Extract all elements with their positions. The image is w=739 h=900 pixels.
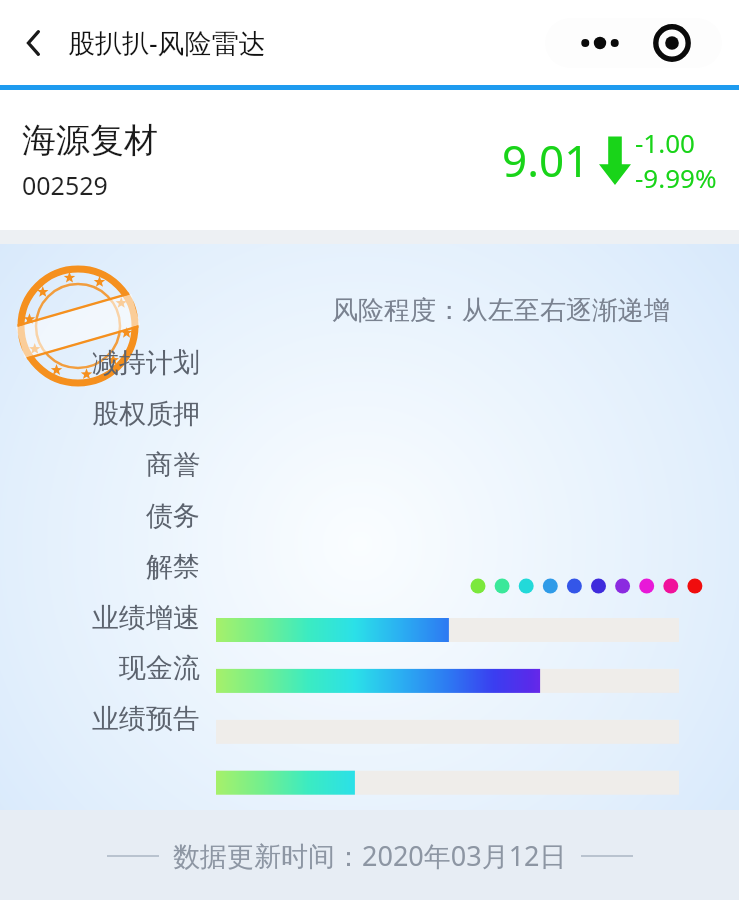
staticText: 海源复材 <box>22 119 158 162</box>
staticText: 002529 <box>22 168 108 202</box>
staticText: 业绩增速 <box>0 601 200 635</box>
button[interactable]: Back <box>14 20 54 66</box>
staticText: 现金流 <box>0 651 200 685</box>
staticText: 解禁 <box>0 550 200 584</box>
staticText: 股权质押 <box>0 397 200 431</box>
staticText: 9.01 <box>502 130 590 190</box>
staticText: 数据更新时间：2020年03月12日 <box>173 837 567 874</box>
staticText: 风险程度：从左至右逐渐递增 <box>332 294 670 327</box>
staticText: -1.00 <box>635 125 695 160</box>
button[interactable]: More and Close <box>545 18 722 68</box>
staticText: 业绩预告 <box>0 702 200 736</box>
staticText: 股扒扒-风险雷达 <box>68 24 266 61</box>
staticText: -9.99% <box>635 160 717 195</box>
staticText: 商誉 <box>0 448 200 482</box>
staticText: 债务 <box>0 499 200 533</box>
staticText: 减持计划 <box>0 346 200 380</box>
